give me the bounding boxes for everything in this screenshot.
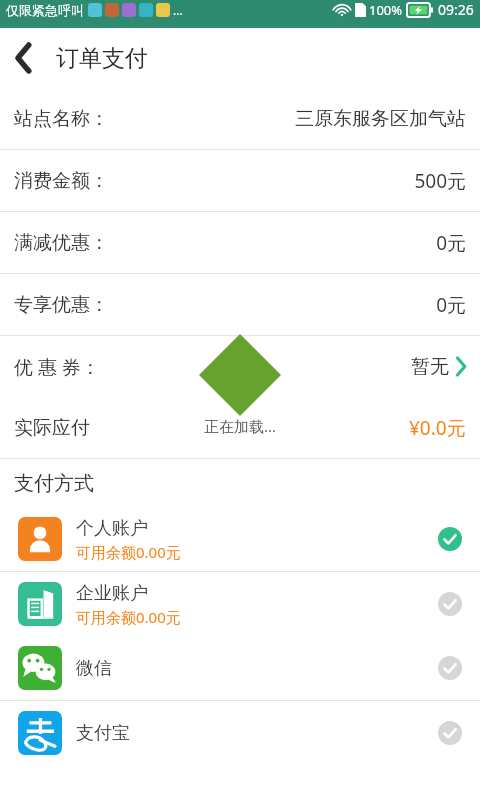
staticText: 09:26 xyxy=(438,0,474,19)
staticText: ... xyxy=(173,2,183,18)
staticText: 专享优惠： xyxy=(14,293,109,317)
button[interactable]: 优 惠 券： xyxy=(0,336,480,397)
staticText: 站点名称： xyxy=(14,107,109,131)
staticText: 0元 xyxy=(436,230,466,256)
staticText: 消费金额： xyxy=(14,169,109,193)
staticText: 实际应付 xyxy=(14,416,90,440)
staticText: 订单支付 xyxy=(56,44,148,73)
button[interactable]: 实际应付 xyxy=(0,397,480,458)
button[interactable]: 支付宝 xyxy=(0,701,480,765)
staticText: 正在加载... xyxy=(204,416,277,436)
staticText: ¥0.0元 xyxy=(409,415,466,441)
staticText: 可用余额0.00元 xyxy=(76,607,181,627)
staticText: 优 惠 券： xyxy=(14,354,100,380)
button[interactable]: 消费金额： xyxy=(0,150,480,211)
staticText: 仅限紧急呼叫 xyxy=(6,2,84,18)
staticText: 满减优惠： xyxy=(14,231,109,255)
staticText: 三原东服务区加气站 xyxy=(295,107,466,131)
staticText: 微信 xyxy=(76,657,112,680)
staticText: 可用余额0.00元 xyxy=(76,542,181,562)
staticText: 支付方式 xyxy=(14,471,94,496)
button[interactable]: 个人账户 xyxy=(0,507,480,571)
staticText: 暂无 xyxy=(411,355,449,379)
staticText: 500元 xyxy=(414,168,466,194)
button[interactable]: 微信 xyxy=(0,636,480,700)
staticText: 企业账户 xyxy=(76,582,148,605)
staticText: 支付宝 xyxy=(76,722,130,745)
staticText: 个人账户 xyxy=(76,517,148,540)
button[interactable]: Back xyxy=(0,34,48,82)
button[interactable]: 企业账户 xyxy=(0,572,480,636)
button[interactable]: 专享优惠： xyxy=(0,274,480,335)
button[interactable]: 满减优惠： xyxy=(0,212,480,273)
staticText: 100% xyxy=(369,1,403,19)
button[interactable]: 站点名称： xyxy=(0,88,480,149)
staticText: 0元 xyxy=(436,292,466,318)
